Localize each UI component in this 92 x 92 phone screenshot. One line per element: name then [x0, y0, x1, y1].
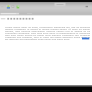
button[interactable]: Browser window [0, 0, 92, 92]
staticText: Lorem ipsum dolor sit amet, consectetur … [5, 25, 90, 41]
